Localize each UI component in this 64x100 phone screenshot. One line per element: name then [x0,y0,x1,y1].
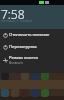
button[interactable]: App [31,72,39,80]
staticText: Включен [9,61,23,65]
button[interactable]: Режим полета [0,53,64,67]
button[interactable]: App [1,72,9,80]
staticText: Режим полета [9,55,38,61]
staticText: 7:58 [1,6,25,22]
staticText: Отключить питание [9,32,50,38]
staticText: Перезагрузка [9,44,37,50]
button[interactable]: App [11,89,19,97]
button[interactable]: App [41,89,49,97]
button[interactable]: App [11,72,19,80]
button[interactable]: App [31,89,39,97]
button[interactable]: App [21,72,29,80]
button[interactable]: App [1,89,9,97]
button[interactable]: Перезагрузка [0,41,64,53]
staticText: пятница, 6 ноября [1,18,33,23]
button[interactable]: Отключить питание [0,29,64,41]
button[interactable]: App [41,72,49,80]
